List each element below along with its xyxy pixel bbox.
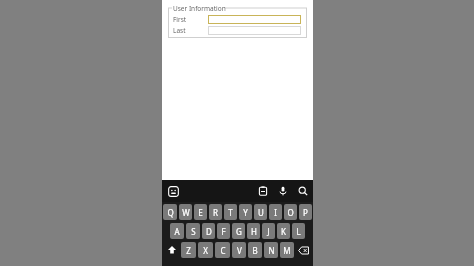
button[interactable]: P [299, 204, 312, 220]
button[interactable]: D [202, 223, 215, 239]
staticText: V [237, 245, 242, 256]
staticText: Last Name: [173, 26, 206, 35]
staticText: R [213, 207, 218, 218]
staticText: W [182, 207, 190, 218]
button[interactable]: N [264, 242, 278, 258]
button[interactable]: C [215, 242, 230, 258]
button[interactable]: X [198, 242, 213, 258]
button[interactable] [208, 26, 301, 35]
staticText: T [228, 207, 233, 218]
staticText: D [206, 226, 212, 237]
button[interactable]: Clipboard [257, 185, 269, 197]
staticText: C [220, 245, 226, 256]
button[interactable]: B [248, 242, 262, 258]
staticText: A [174, 226, 180, 237]
button[interactable]: E [194, 204, 207, 220]
staticText: X [203, 245, 208, 256]
button[interactable]: J [262, 223, 275, 239]
button[interactable]: U [254, 204, 267, 220]
button[interactable]: Shift [163, 242, 181, 258]
button[interactable]: I [269, 204, 282, 220]
staticText: F [221, 226, 226, 237]
staticText: Y [243, 207, 248, 218]
button[interactable]: K [277, 223, 290, 239]
staticText: N [268, 245, 275, 256]
staticText: E [198, 207, 203, 218]
button[interactable]: W [179, 204, 192, 220]
button[interactable]: Emoji [166, 184, 180, 198]
staticText: L [296, 226, 301, 237]
button[interactable]: T [224, 204, 237, 220]
button[interactable]: F [217, 223, 230, 239]
staticText: J [267, 226, 270, 237]
button[interactable]: Q [163, 204, 177, 220]
staticText: I [274, 207, 277, 218]
button[interactable]: H [247, 223, 260, 239]
button[interactable]: A [170, 223, 184, 239]
button[interactable]: R [209, 204, 222, 220]
staticText: B [252, 245, 258, 256]
staticText: M [283, 245, 291, 256]
staticText: H [251, 226, 257, 237]
button[interactable]: V [232, 242, 246, 258]
button[interactable]: L [292, 223, 305, 239]
staticText: Q [167, 207, 174, 218]
staticText: Z [186, 245, 191, 256]
staticText: First Name: [173, 15, 206, 24]
button[interactable]: Y [239, 204, 252, 220]
staticText: K [281, 226, 286, 237]
staticText: G [236, 226, 242, 237]
button[interactable]: O [284, 204, 297, 220]
button[interactable]: Search [297, 185, 309, 197]
button[interactable]: Backspace [294, 242, 312, 258]
button[interactable]: M [280, 242, 294, 258]
button[interactable]: Voice input [277, 185, 289, 197]
button[interactable]: Z [181, 242, 196, 258]
button[interactable]: G [232, 223, 245, 239]
staticText: O [287, 207, 294, 218]
staticText: S [191, 226, 196, 237]
staticText: P [303, 207, 308, 218]
staticText: User Information [173, 4, 226, 13]
button[interactable]: S [186, 223, 200, 239]
button[interactable] [208, 15, 301, 24]
staticText: U [258, 207, 264, 218]
